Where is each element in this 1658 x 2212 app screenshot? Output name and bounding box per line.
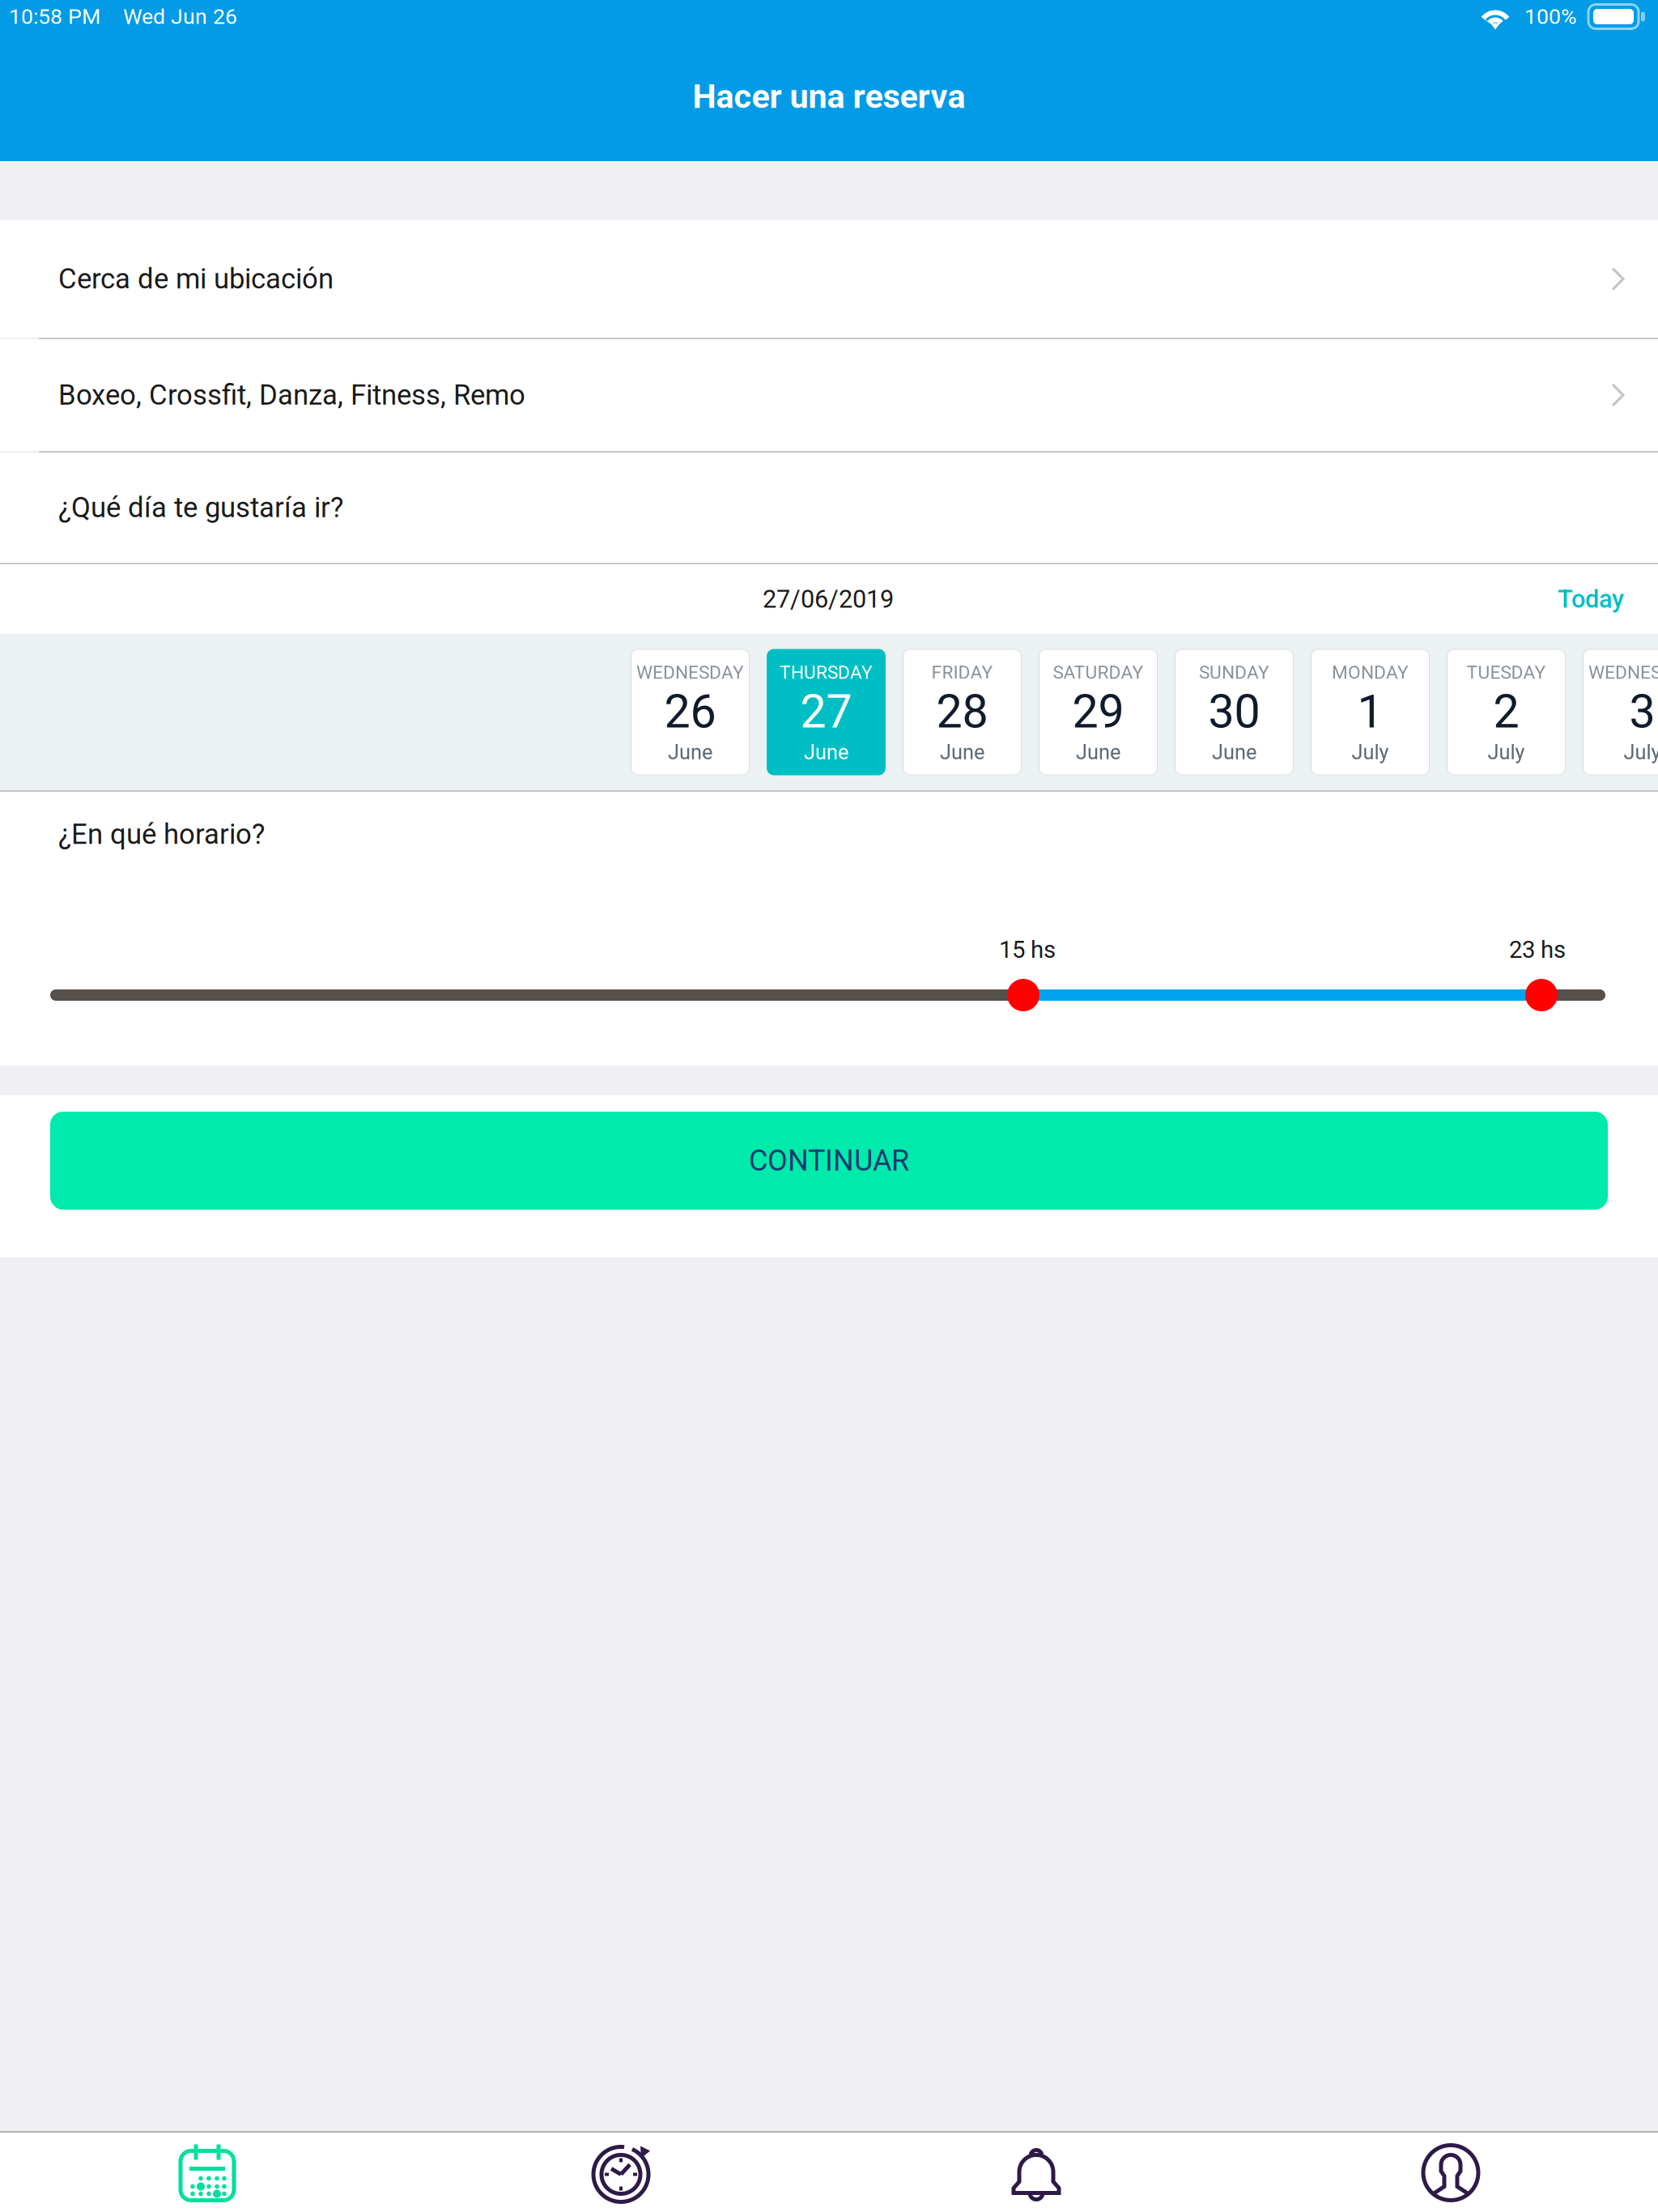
staticText: WEDNESDAY	[1588, 662, 1658, 683]
button[interactable]: Boxeo, Crossfit, Danza, Fitness, Remo	[0, 339, 1658, 451]
staticText: June	[940, 740, 984, 764]
staticText: June	[804, 740, 848, 764]
staticText: 27/06/2019	[763, 585, 894, 614]
button[interactable]: FRIDAY	[903, 649, 1022, 775]
staticText: Wed Jun 26	[123, 4, 237, 29]
button[interactable]: TUESDAY	[1447, 649, 1566, 775]
button[interactable]: Notificaciones	[829, 2133, 1243, 2212]
button[interactable]: Reservar	[0, 2133, 414, 2212]
staticText: FRIDAY	[931, 662, 993, 683]
staticText: SUNDAY	[1199, 662, 1269, 683]
staticText: 3	[1629, 684, 1655, 739]
button[interactable]: Cerca de mi ubicación	[0, 220, 1658, 338]
staticText: 2	[1493, 684, 1519, 739]
button[interactable]: MONDAY	[1311, 649, 1430, 775]
button[interactable]: SUNDAY	[1175, 649, 1294, 775]
staticText: CONTINUAR	[749, 1144, 909, 1178]
staticText: June	[1212, 740, 1256, 764]
button[interactable]: Today	[1558, 585, 1624, 614]
staticText: 15 hs	[999, 936, 1056, 964]
staticText: 10:58 PM	[9, 4, 100, 29]
staticText: ¿En qué horario?	[58, 818, 265, 851]
staticText: THURSDAY	[780, 662, 873, 683]
staticText: SATURDAY	[1053, 662, 1144, 683]
staticText: 23 hs	[1509, 936, 1566, 964]
staticText: 1	[1357, 684, 1383, 739]
staticText: ¿Qué día te gustaría ir?	[58, 491, 343, 524]
button[interactable]: WEDNESDAY	[631, 649, 750, 775]
staticText: 28	[936, 684, 988, 739]
staticText: July	[1352, 740, 1389, 764]
button[interactable]: Perfil	[1243, 2133, 1658, 2212]
staticText: MONDAY	[1332, 662, 1409, 683]
staticText: Hacer una reserva	[693, 77, 965, 116]
staticText: 27	[800, 684, 852, 739]
staticText: June	[1076, 740, 1120, 764]
staticText: 30	[1208, 684, 1260, 739]
staticText: 100%	[1524, 4, 1577, 29]
staticText: TUESDAY	[1467, 662, 1546, 683]
staticText: July	[1624, 740, 1658, 764]
staticText: Cerca de mi ubicación	[58, 262, 334, 295]
staticText: Today	[1558, 585, 1624, 614]
staticText: WEDNESDAY	[636, 662, 744, 683]
button[interactable]: THURSDAY	[767, 649, 886, 775]
button[interactable]: Historial	[414, 2133, 829, 2212]
staticText: 29	[1072, 684, 1124, 739]
staticText: 26	[664, 684, 716, 739]
staticText: July	[1488, 740, 1525, 764]
staticText: June	[668, 740, 712, 764]
staticText: Boxeo, Crossfit, Danza, Fitness, Remo	[58, 379, 525, 412]
button[interactable]: CONTINUAR	[50, 1112, 1608, 1210]
button[interactable]: SATURDAY	[1039, 649, 1158, 775]
button[interactable]: WEDNESDAY	[1583, 649, 1658, 775]
